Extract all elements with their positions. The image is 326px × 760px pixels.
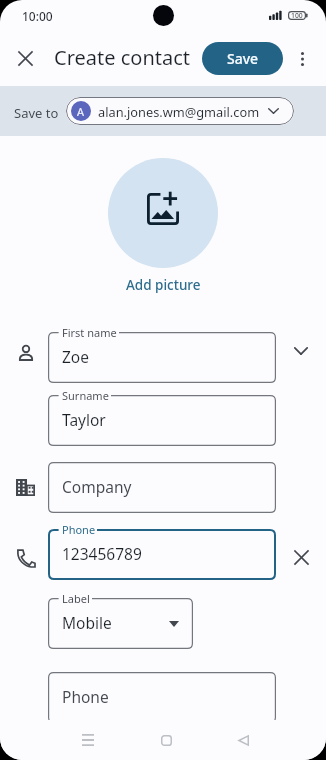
button[interactable]: Clear phone [283, 539, 319, 575]
staticText: Zoe [62, 346, 89, 367]
staticText: A [77, 104, 85, 119]
staticText: Save [227, 49, 259, 68]
staticText: alan.jones.wm@gmail.com [98, 103, 260, 120]
staticText: 10:00 [22, 8, 53, 24]
staticText: Save to [14, 104, 59, 122]
button[interactable]: Recents [70, 722, 106, 758]
button[interactable]: More options [287, 44, 317, 74]
button[interactable]: Save [202, 42, 283, 75]
button[interactable]: Phone [48, 529, 276, 580]
button[interactable]: A [66, 97, 294, 125]
staticText: 100 [291, 11, 303, 20]
staticText: First name [62, 325, 117, 340]
button[interactable]: First name [48, 332, 276, 383]
staticText: Phone [62, 686, 109, 707]
button[interactable]: Back [225, 722, 261, 758]
button[interactable]: Company [48, 462, 276, 513]
staticText: Mobile [62, 612, 112, 633]
staticText: Create contact [54, 44, 191, 71]
staticText: Company [62, 476, 132, 497]
button[interactable]: Add picture [108, 158, 218, 268]
button[interactable]: Phone [48, 672, 276, 723]
staticText: Add picture [126, 276, 201, 294]
button[interactable]: Close [7, 40, 43, 76]
button[interactable]: Home [148, 722, 184, 758]
button[interactable]: Expand name fields [283, 333, 319, 369]
staticText: Surname [62, 388, 109, 403]
staticText: Taylor [62, 409, 106, 430]
staticText: Phone [62, 522, 96, 537]
button[interactable]: Surname [48, 395, 276, 446]
button[interactable]: Label [48, 598, 193, 649]
staticText: Label [62, 591, 90, 606]
staticText: 123456789 [62, 543, 142, 564]
